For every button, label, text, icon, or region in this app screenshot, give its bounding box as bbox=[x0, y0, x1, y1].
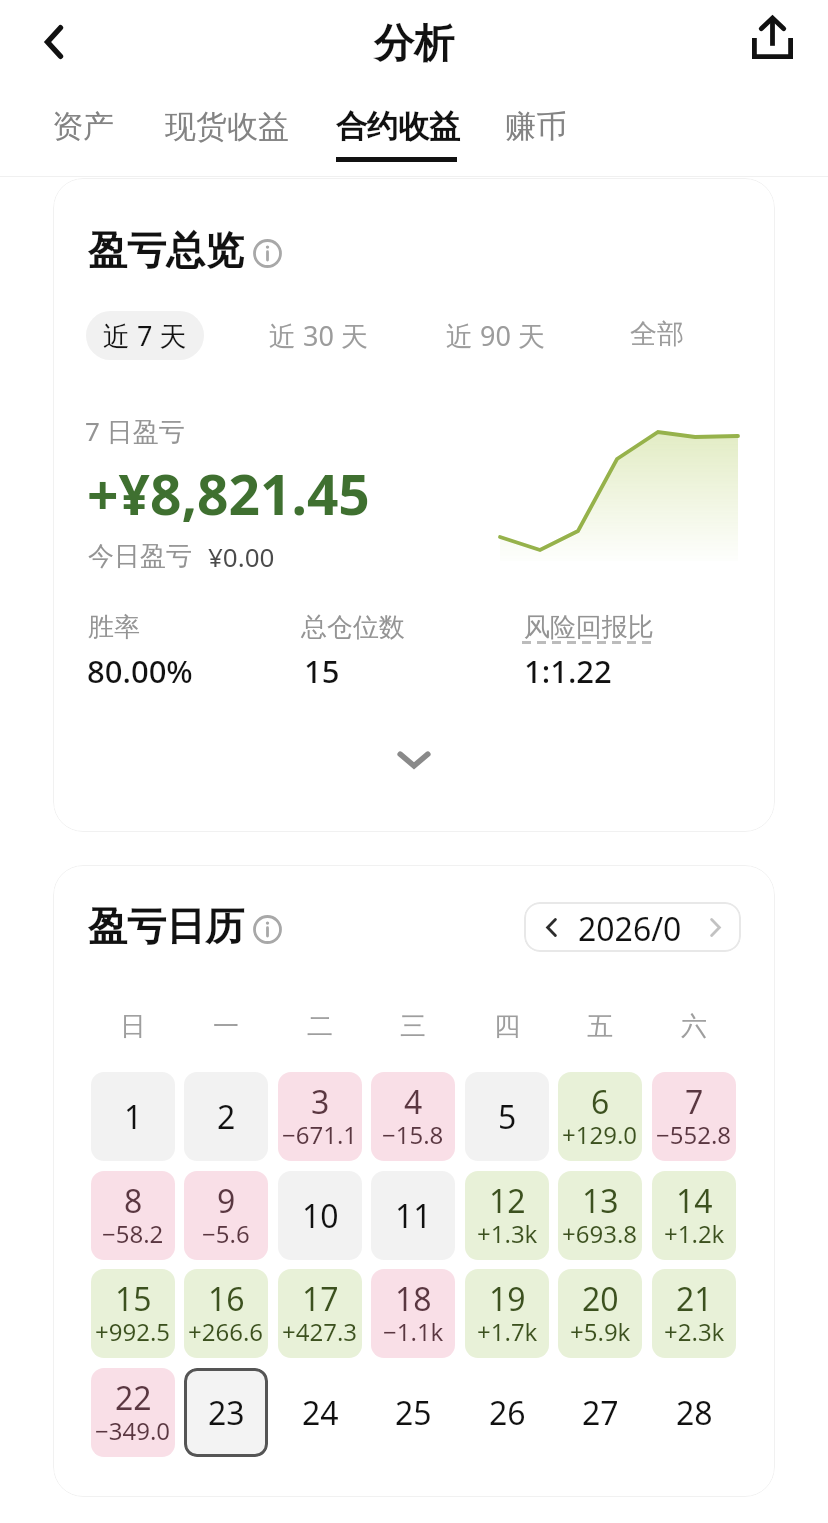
staticText: 二 bbox=[307, 1010, 333, 1042]
staticText: +266.6 bbox=[188, 1315, 264, 1348]
button[interactable]: 1 bbox=[91, 1072, 175, 1161]
button[interactable]: 2 bbox=[184, 1072, 268, 1161]
staticText: 6 bbox=[591, 1080, 610, 1124]
staticText: 4 bbox=[404, 1080, 423, 1124]
staticText: 80.00% bbox=[87, 650, 193, 692]
button[interactable]: 22 bbox=[91, 1368, 175, 1457]
button[interactable]: 11 bbox=[371, 1171, 455, 1260]
button[interactable]: 14 bbox=[652, 1171, 736, 1260]
button[interactable]: 23 bbox=[184, 1368, 268, 1457]
button[interactable]: Share bbox=[740, 5, 804, 69]
staticText: 合约收益 bbox=[336, 107, 460, 146]
button[interactable]: 26 bbox=[465, 1368, 549, 1457]
button[interactable]: 10 bbox=[278, 1171, 362, 1260]
staticText: 15 bbox=[115, 1277, 152, 1321]
staticText: 5 bbox=[498, 1095, 517, 1139]
staticText: 18 bbox=[395, 1277, 432, 1321]
button[interactable]: 8 bbox=[91, 1171, 175, 1260]
button[interactable]: 28 bbox=[652, 1368, 736, 1457]
button[interactable]: 20 bbox=[558, 1269, 642, 1358]
button[interactable]: 合约收益 bbox=[320, 98, 473, 166]
staticText: +1.3k bbox=[477, 1217, 538, 1250]
staticText: +693.8 bbox=[562, 1217, 638, 1250]
button[interactable]: 25 bbox=[371, 1368, 455, 1457]
staticText: 赚币 bbox=[505, 107, 567, 146]
staticText: 19 bbox=[489, 1277, 526, 1321]
staticText: 13 bbox=[582, 1179, 619, 1223]
staticText: +129.0 bbox=[562, 1118, 638, 1151]
staticText: 25 bbox=[395, 1391, 432, 1435]
staticText: 盈亏总览 bbox=[88, 226, 244, 275]
button[interactable]: Expand bbox=[379, 725, 449, 795]
staticText: 日 bbox=[120, 1010, 146, 1042]
staticText: −1.1k bbox=[383, 1315, 444, 1348]
staticText: 2 bbox=[217, 1095, 236, 1139]
staticText: 1:1.22 bbox=[524, 650, 612, 692]
staticText: 14 bbox=[676, 1179, 713, 1223]
button[interactable]: 9 bbox=[184, 1171, 268, 1260]
button[interactable]: 27 bbox=[558, 1368, 642, 1457]
staticText: 27 bbox=[582, 1391, 619, 1435]
button[interactable]: 近 7 天 bbox=[86, 311, 204, 360]
staticText: 26 bbox=[489, 1391, 526, 1435]
staticText: 22 bbox=[115, 1376, 152, 1420]
button[interactable]: 5 bbox=[465, 1072, 549, 1161]
button[interactable]: 6 bbox=[558, 1072, 642, 1161]
button[interactable]: 12 bbox=[465, 1171, 549, 1260]
staticText: 3 bbox=[311, 1080, 330, 1124]
staticText: 四 bbox=[494, 1010, 520, 1042]
staticText: 8 bbox=[124, 1179, 143, 1223]
staticText: 9 bbox=[217, 1179, 236, 1223]
staticText: +1.7k bbox=[477, 1315, 538, 1348]
staticText: 三 bbox=[400, 1010, 426, 1042]
button[interactable]: 24 bbox=[278, 1368, 362, 1457]
button[interactable]: 4 bbox=[371, 1072, 455, 1161]
button[interactable]: 16 bbox=[184, 1269, 268, 1358]
staticText: ¥0.00 bbox=[208, 539, 275, 574]
staticText: 胜率 bbox=[88, 611, 140, 644]
staticText: −552.8 bbox=[656, 1118, 732, 1151]
staticText: 21 bbox=[676, 1277, 713, 1321]
staticText: 11 bbox=[395, 1194, 432, 1238]
button[interactable]: 18 bbox=[371, 1269, 455, 1358]
staticText: 盈亏日历 bbox=[88, 902, 244, 951]
staticText: +2.3k bbox=[664, 1315, 725, 1348]
button[interactable]: 7 bbox=[652, 1072, 736, 1161]
button[interactable]: 17 bbox=[278, 1269, 362, 1358]
staticText: −58.2 bbox=[102, 1217, 164, 1250]
button[interactable]: 15 bbox=[91, 1269, 175, 1358]
button[interactable]: 近 30 天 bbox=[252, 311, 385, 360]
staticText: 2026/02 bbox=[578, 907, 690, 952]
staticText: 近 90 天 bbox=[446, 317, 545, 354]
button[interactable]: 13 bbox=[558, 1171, 642, 1260]
staticText: 24 bbox=[302, 1391, 339, 1435]
staticText: 10 bbox=[302, 1194, 339, 1238]
staticText: 五 bbox=[587, 1010, 613, 1042]
staticText: +5.9k bbox=[570, 1315, 631, 1348]
staticText: 12 bbox=[489, 1179, 526, 1223]
staticText: +1.2k bbox=[664, 1217, 725, 1250]
staticText: 28 bbox=[676, 1391, 713, 1435]
button[interactable]: Previous month bbox=[524, 902, 578, 952]
button[interactable]: 赚币 bbox=[489, 98, 583, 166]
button[interactable]: 资产 bbox=[36, 98, 130, 166]
button[interactable]: 2026/02 bbox=[578, 902, 690, 952]
staticText: 16 bbox=[208, 1277, 245, 1321]
staticText: 近 7 天 bbox=[103, 317, 187, 354]
staticText: +427.3 bbox=[282, 1315, 358, 1348]
staticText: 六 bbox=[681, 1010, 707, 1042]
staticText: 全部 bbox=[630, 317, 684, 351]
button[interactable]: 现货收益 bbox=[149, 98, 302, 166]
button[interactable]: Next month bbox=[690, 902, 741, 952]
staticText: 一 bbox=[213, 1010, 239, 1042]
button[interactable]: 21 bbox=[652, 1269, 736, 1358]
button[interactable]: 3 bbox=[278, 1072, 362, 1161]
button[interactable]: Back bbox=[22, 10, 86, 74]
staticText: 资产 bbox=[52, 107, 114, 146]
staticText: +992.5 bbox=[95, 1315, 171, 1348]
staticText: 风险回报比 bbox=[524, 611, 654, 644]
button[interactable]: 19 bbox=[465, 1269, 549, 1358]
staticText: 15 bbox=[304, 650, 340, 692]
button[interactable]: 近 90 天 bbox=[429, 311, 562, 360]
button[interactable]: 全部 bbox=[613, 311, 701, 357]
